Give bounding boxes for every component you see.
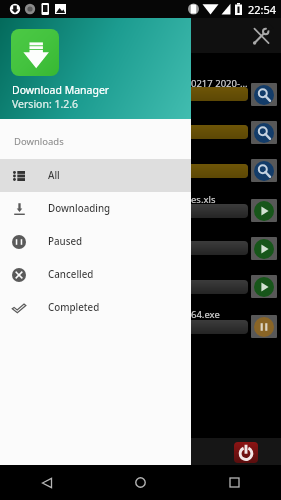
staticText: Downloads <box>14 135 64 148</box>
staticText: Version: 1.2.6 <box>12 97 79 111</box>
button[interactable]: Search <box>251 121 277 144</box>
staticText: Cancelled <box>48 268 94 281</box>
staticText: Download Manager <box>12 83 110 97</box>
button[interactable]: Completed <box>0 291 191 324</box>
button[interactable]: Resume <box>251 199 277 222</box>
button[interactable]: Resume <box>251 275 277 298</box>
staticText: Paused <box>48 235 83 248</box>
staticText: es.xls <box>191 193 216 206</box>
staticText: Downloading <box>48 202 111 215</box>
staticText: 0217 2020-... <box>191 77 248 90</box>
staticText: 64.exe <box>191 308 220 321</box>
button[interactable]: Resume <box>251 237 277 260</box>
button[interactable]: Power <box>234 442 258 463</box>
button[interactable]: Tools <box>251 26 271 46</box>
button[interactable]: Recents <box>187 465 281 500</box>
button[interactable]: Back <box>0 465 93 500</box>
button[interactable]: Search <box>251 159 277 182</box>
button[interactable]: Paused <box>0 225 191 258</box>
button[interactable]: Pause <box>251 315 277 338</box>
button[interactable]: Cancelled <box>0 258 191 291</box>
button[interactable]: Downloading <box>0 192 191 225</box>
staticText: 22:54 <box>248 2 277 17</box>
button[interactable]: Search <box>251 83 277 106</box>
staticText: All <box>48 169 60 182</box>
button[interactable]: Home <box>93 465 187 500</box>
button[interactable]: All <box>0 159 191 192</box>
staticText: Completed <box>48 301 100 314</box>
